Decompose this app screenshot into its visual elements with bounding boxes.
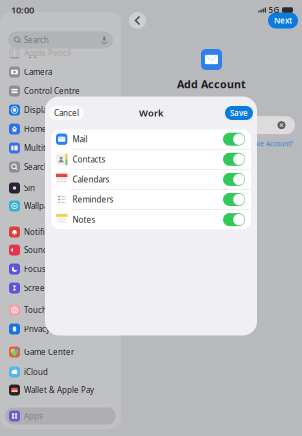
button[interactable]: Cancel: [49, 106, 84, 120]
button[interactable]: Notes: [51, 210, 251, 229]
button[interactable]: Wallet & Apple Pay: [5, 381, 116, 398]
staticText: Mail: [72, 134, 87, 144]
button[interactable]: Back: [129, 12, 146, 29]
staticText: Reminders: [72, 194, 113, 205]
button[interactable]: Contacts: [51, 150, 251, 170]
staticText: Work: [139, 107, 163, 119]
staticText: Next: [274, 15, 292, 26]
button[interactable]: Multitasking: [5, 139, 116, 156]
staticText: Multitasking: [24, 143, 70, 153]
staticText: Search: [24, 162, 49, 172]
staticText: Notes: [72, 214, 95, 225]
staticText: Apps: [24, 411, 43, 421]
button[interactable]: Apple Pencil: [5, 44, 116, 61]
button[interactable]: iCloud: [5, 363, 116, 380]
staticText: 10:00: [11, 4, 34, 16]
button[interactable]: Screen Time: [5, 279, 116, 296]
button[interactable]: Display: [5, 101, 116, 118]
staticText: Cancel: [54, 108, 79, 118]
staticText: iCloud: [24, 367, 48, 377]
staticText: Sounds: [24, 245, 52, 255]
button[interactable]: Sounds: [5, 241, 116, 258]
button[interactable]: Home: [5, 120, 116, 137]
button[interactable]: Focus: [5, 260, 116, 277]
button[interactable]: Game Center: [5, 343, 116, 360]
staticText: Screen Time: [24, 283, 70, 293]
staticText: Save: [230, 108, 248, 118]
staticText: Focus: [24, 264, 46, 274]
staticText: Wallpaper: [24, 201, 61, 211]
button[interactable]: Mail: [51, 129, 251, 150]
button[interactable]: Search: [5, 158, 116, 175]
staticText: Control Centre: [24, 86, 80, 96]
button[interactable]: Touch ID: [5, 301, 116, 318]
staticText: Game Center: [24, 347, 74, 357]
button[interactable]: Apps: [5, 407, 116, 424]
button[interactable]: Privacy: [5, 320, 116, 337]
button[interactable]: Calendars: [51, 170, 251, 190]
staticText: Wallet & Apple Pay: [24, 385, 94, 395]
staticText: Calendars: [72, 174, 109, 185]
button[interactable]: Clear text: [277, 121, 286, 130]
staticText: Add Account: [177, 77, 246, 91]
staticText: Home: [24, 124, 47, 134]
staticText: Privacy: [24, 324, 50, 334]
staticText: Apple Pencil: [24, 48, 71, 58]
button[interactable]: Notifications: [5, 223, 116, 240]
button[interactable]: Reminders: [51, 190, 251, 210]
button[interactable]: Camera: [5, 63, 116, 80]
staticText: 5G: [268, 5, 279, 15]
staticText: Siri: [24, 183, 35, 193]
staticText: Search: [24, 35, 49, 45]
staticText: Camera: [24, 67, 52, 77]
staticText: Touch ID: [24, 305, 58, 315]
button[interactable]: Control Centre: [5, 82, 116, 99]
staticText: Notifications: [24, 227, 72, 237]
staticText: name@example.com: [161, 119, 253, 131]
button[interactable]: Next: [268, 12, 298, 28]
button[interactable]: Siri: [5, 179, 116, 196]
staticText: Display: [24, 105, 51, 115]
button[interactable]: Save: [225, 106, 253, 120]
staticText: Contacts: [72, 154, 105, 165]
button[interactable]: Wallpaper: [5, 197, 116, 214]
staticText: Forgot password or Apple Account?: [183, 139, 293, 148]
